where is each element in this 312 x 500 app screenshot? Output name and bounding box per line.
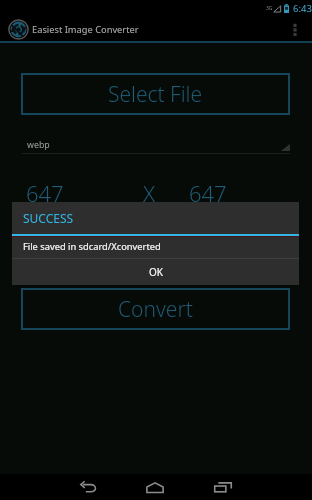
staticText: webp <box>27 139 50 151</box>
staticText: SUCCESS <box>23 210 74 226</box>
staticText: File saved in sdcard/Xconverted <box>23 240 161 253</box>
button[interactable]: OK <box>12 259 299 285</box>
button[interactable]: Convert <box>21 288 290 330</box>
button[interactable]: Home <box>137 474 173 500</box>
button[interactable]: Back <box>70 474 106 500</box>
staticText: Convert <box>118 295 193 324</box>
staticText: Select File <box>108 80 203 109</box>
staticText: 3G <box>266 5 273 12</box>
staticText: 647 <box>189 178 227 208</box>
staticText: 6:43 <box>293 2 312 15</box>
button[interactable]: Select File <box>21 73 290 115</box>
button[interactable]: Recent apps <box>205 474 241 500</box>
staticText: Easiest Image Converter <box>32 23 139 36</box>
staticText: OK <box>149 265 163 279</box>
button[interactable]: webp <box>22 139 290 154</box>
staticText: X <box>143 178 156 208</box>
staticText: 647 <box>26 178 64 208</box>
button[interactable]: More options <box>284 18 306 40</box>
